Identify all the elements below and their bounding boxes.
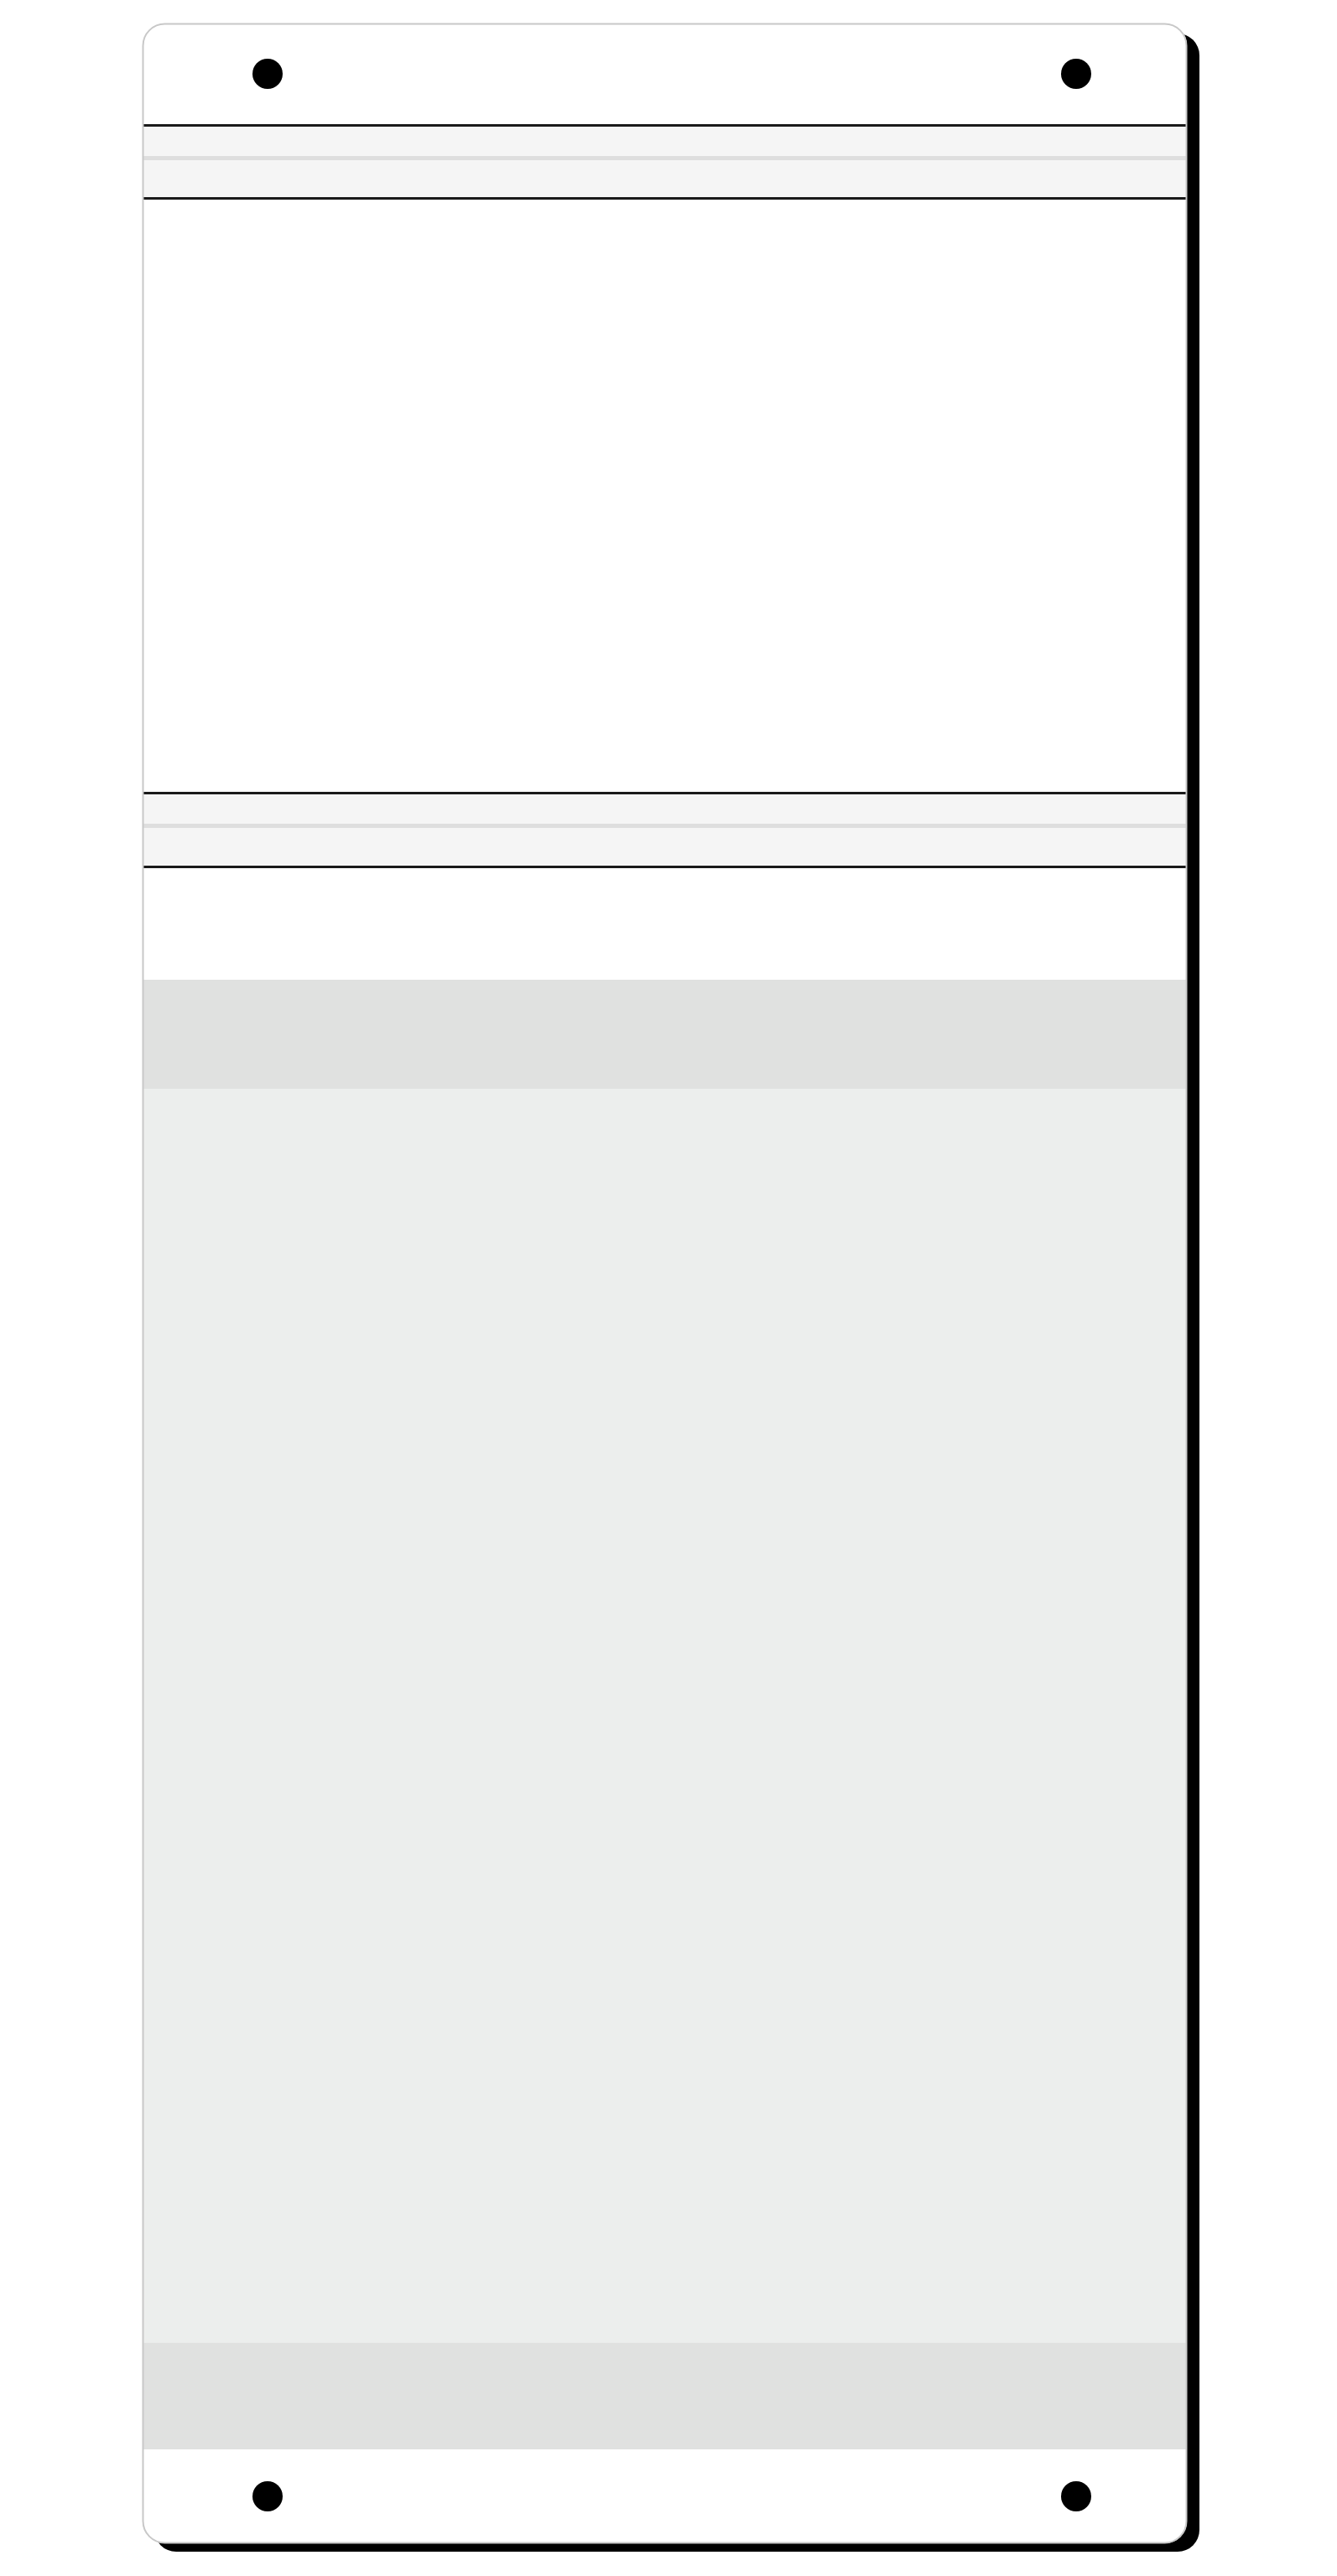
button[interactable]: Status indicator right <box>1056 54 1096 94</box>
button[interactable] <box>143 792 1187 868</box>
button[interactable]: Navigation item left <box>247 2476 288 2516</box>
button[interactable]: Navigation item right <box>1056 2476 1096 2516</box>
button[interactable] <box>143 124 1187 200</box>
button[interactable]: Status indicator left <box>247 54 288 94</box>
